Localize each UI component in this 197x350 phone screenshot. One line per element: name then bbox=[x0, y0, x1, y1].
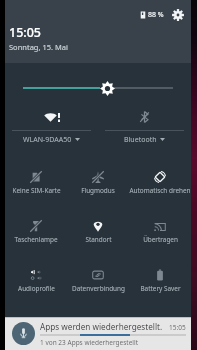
button[interactable]: WLAN-9DAA50 bbox=[5, 91, 98, 148]
staticText: Audioprofile bbox=[18, 284, 55, 293]
staticText: Keine SIM-Karte bbox=[12, 186, 61, 195]
staticText: Flugmodus bbox=[81, 186, 115, 195]
button[interactable]: Flugmodus bbox=[67, 148, 129, 197]
staticText: 1 von 23 Apps wiederhergestellt bbox=[40, 338, 139, 347]
staticText: Sonntag, 15. Mai bbox=[9, 42, 68, 52]
button[interactable]: Apps werden wiederhergestellt. bbox=[5, 317, 191, 350]
button[interactable]: Automatisch drehen bbox=[129, 148, 191, 197]
button[interactable]: Keine SIM-Karte bbox=[5, 148, 67, 197]
button[interactable]: Einstellungen bbox=[170, 7, 185, 22]
staticText: Battery Saver bbox=[140, 284, 181, 293]
staticText: Übertragen bbox=[143, 235, 178, 244]
button[interactable]: Battery Saver bbox=[129, 246, 191, 295]
staticText: Automatisch drehen bbox=[129, 186, 191, 195]
staticText: Apps werden wiederhergestellt. bbox=[40, 321, 167, 332]
staticText: 15:05 bbox=[169, 323, 186, 332]
staticText: 88 % bbox=[148, 10, 164, 20]
staticText: 15:05 bbox=[9, 24, 42, 41]
staticText: Standort bbox=[85, 235, 112, 244]
staticText: Datenverbindung bbox=[72, 284, 125, 293]
staticText: Bluetooth bbox=[124, 135, 157, 145]
button[interactable]: Audioprofile bbox=[5, 246, 67, 295]
button[interactable]: Standort bbox=[67, 197, 129, 246]
button[interactable]: Taschenlampe bbox=[5, 197, 67, 246]
button[interactable]: Bluetooth bbox=[98, 91, 191, 148]
button[interactable]: Übertragen bbox=[129, 197, 191, 246]
staticText: WLAN-9DAA50 bbox=[23, 135, 72, 145]
staticText: Taschenlampe bbox=[14, 235, 58, 244]
button[interactable]: Datenverbindung bbox=[67, 246, 129, 295]
